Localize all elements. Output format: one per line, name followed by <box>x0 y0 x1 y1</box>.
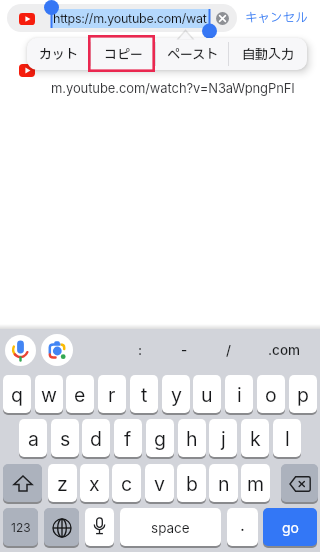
staticText: h <box>186 427 198 451</box>
button[interactable]: : <box>126 336 154 364</box>
button[interactable]: コピー <box>91 38 156 70</box>
button[interactable]: k <box>241 419 269 458</box>
staticText: ペースト <box>167 45 219 64</box>
button[interactable]: go <box>263 508 317 547</box>
staticText: t <box>141 383 148 407</box>
button[interactable]: p <box>289 375 317 414</box>
button[interactable]: f <box>114 419 142 458</box>
button[interactable]: l <box>273 419 301 458</box>
staticText: コピー <box>104 45 144 64</box>
staticText: c <box>121 472 133 496</box>
button[interactable]: m <box>241 464 270 503</box>
staticText: n <box>218 472 230 496</box>
button[interactable]: t <box>130 375 158 414</box>
staticText: i <box>237 383 242 407</box>
staticText: d <box>90 427 102 451</box>
staticText: : <box>138 342 143 358</box>
button[interactable]: c <box>112 464 141 503</box>
button[interactable]: s <box>51 419 79 458</box>
staticText: v <box>154 472 165 496</box>
staticText: 自動入力 <box>242 45 295 64</box>
staticText: space <box>151 520 190 536</box>
button[interactable]: o <box>257 375 285 414</box>
staticText: カット <box>39 45 79 64</box>
staticText: r <box>108 383 116 407</box>
staticText: l <box>285 427 290 451</box>
staticText: q <box>11 383 23 407</box>
staticText: w <box>41 383 57 407</box>
button[interactable]: a <box>19 419 47 458</box>
staticText: j <box>221 427 226 451</box>
button[interactable] <box>41 334 73 366</box>
button[interactable]: / <box>214 336 242 364</box>
staticText: z <box>57 472 68 496</box>
button[interactable]: z <box>48 464 77 503</box>
staticText: a <box>28 427 39 451</box>
staticText: k <box>250 427 261 451</box>
staticText: u <box>201 383 213 407</box>
button[interactable]: h <box>178 419 206 458</box>
button[interactable] <box>3 464 42 503</box>
button[interactable]: ペースト <box>156 38 229 70</box>
button[interactable]: n <box>209 464 238 503</box>
staticText: . <box>240 515 245 536</box>
staticText: .com <box>268 342 301 358</box>
button[interactable] <box>5 335 36 366</box>
staticText: https://m.youtube.com/wat <box>53 11 207 26</box>
button[interactable]: 自動入力 <box>229 38 308 70</box>
button[interactable]: e <box>66 375 94 414</box>
staticText: g <box>154 427 166 451</box>
staticText: b <box>186 472 198 496</box>
button[interactable]: q <box>3 375 31 414</box>
button[interactable]: x <box>80 464 109 503</box>
button[interactable]: .com <box>266 336 302 364</box>
staticText: x <box>89 472 100 496</box>
button[interactable]: space <box>120 508 221 547</box>
staticText: キャンセル <box>245 9 308 28</box>
button[interactable] <box>85 508 114 547</box>
button[interactable]: d <box>82 419 110 458</box>
button[interactable] <box>216 12 229 25</box>
button[interactable]: キャンセル <box>240 5 312 31</box>
staticText: y <box>171 383 182 407</box>
button[interactable] <box>44 508 79 547</box>
staticText: / <box>226 342 231 358</box>
button[interactable] <box>281 464 318 503</box>
button[interactable]: b <box>177 464 206 503</box>
button[interactable]: v <box>145 464 174 503</box>
staticText: e <box>74 383 86 407</box>
staticText: m <box>247 472 265 496</box>
button[interactable]: y <box>162 375 190 414</box>
button[interactable]: u <box>193 375 221 414</box>
staticText: o <box>265 383 277 407</box>
button[interactable]: g <box>146 419 174 458</box>
staticText: - <box>181 342 188 358</box>
staticText: s <box>60 427 71 451</box>
staticText: m.youtube.com/watch?v=N3aWpngPnFI <box>51 80 295 96</box>
button[interactable]: 123 <box>3 508 38 547</box>
button[interactable]: m.youtube.com/watch?v=N3aWpngPnFI <box>40 78 306 98</box>
staticText: go <box>282 519 299 536</box>
button[interactable] <box>7 4 237 32</box>
staticText: p <box>297 383 309 407</box>
staticText: 123 <box>11 520 31 535</box>
button[interactable]: w <box>35 375 63 414</box>
button[interactable]: カット <box>27 38 91 70</box>
button[interactable]: . <box>227 508 258 547</box>
button[interactable]: j <box>209 419 237 458</box>
staticText: f <box>124 427 132 451</box>
button[interactable]: - <box>170 336 198 364</box>
button[interactable]: r <box>98 375 126 414</box>
button[interactable]: i <box>225 375 253 414</box>
